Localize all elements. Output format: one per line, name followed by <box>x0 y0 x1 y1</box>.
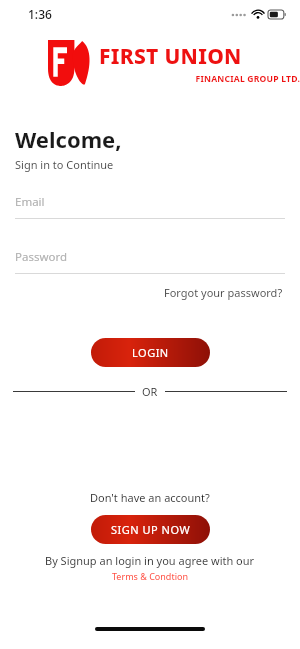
button[interactable]: SIGN UP NOW <box>91 515 210 544</box>
staticText: By Signup an login in you agree with our <box>45 553 255 568</box>
staticText: FIRST UNION <box>99 42 242 71</box>
staticText: Don't have an account? <box>90 490 210 505</box>
other: First Union logo <box>48 40 92 86</box>
staticText: Forgot your password? <box>164 285 283 300</box>
staticText: Sign in to Continue <box>15 157 114 172</box>
staticText: 1:36 <box>28 6 52 22</box>
staticText: Email <box>15 194 45 210</box>
button[interactable]: Password <box>15 249 285 274</box>
staticText: SIGN UP NOW <box>111 522 191 537</box>
staticText: Password <box>15 249 68 265</box>
staticText: LOGIN <box>132 345 169 360</box>
staticText: FINANCIAL GROUP LTD. <box>99 73 300 85</box>
button[interactable]: Terms & Condtion <box>110 570 190 582</box>
staticText: Welcome, <box>15 124 122 154</box>
staticText: OR <box>142 384 158 399</box>
staticText: Terms & Condtion <box>112 570 188 582</box>
button[interactable]: Forgot your password? <box>162 283 285 302</box>
button[interactable]: LOGIN <box>91 338 210 367</box>
button[interactable]: Email <box>15 194 285 219</box>
